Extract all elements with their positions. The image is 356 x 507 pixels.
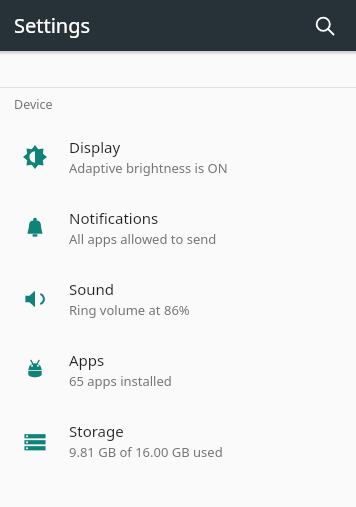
staticText: 9.81 GB of 16.00 GB used bbox=[69, 443, 223, 461]
button[interactable]: Display bbox=[0, 121, 356, 192]
staticText: Storage bbox=[69, 421, 124, 441]
staticText: 65 apps installed bbox=[69, 372, 172, 390]
staticText: Apps bbox=[69, 350, 105, 370]
button[interactable]: Apps bbox=[0, 334, 356, 405]
staticText: Settings bbox=[14, 12, 91, 39]
staticText: Ring volume at 86% bbox=[69, 301, 190, 319]
button[interactable]: Sound bbox=[0, 263, 356, 334]
staticText: Notifications bbox=[69, 208, 159, 228]
staticText: Sound bbox=[69, 279, 115, 299]
staticText: Adaptive brightness is ON bbox=[69, 159, 228, 177]
button[interactable]: Notifications bbox=[0, 192, 356, 263]
button[interactable]: Search bbox=[303, 4, 347, 48]
staticText: All apps allowed to send bbox=[69, 230, 217, 248]
button[interactable]: More bbox=[0, 0, 356, 44]
staticText: Display bbox=[69, 137, 121, 157]
button[interactable]: Storage bbox=[0, 405, 356, 476]
staticText: Device bbox=[14, 96, 53, 113]
